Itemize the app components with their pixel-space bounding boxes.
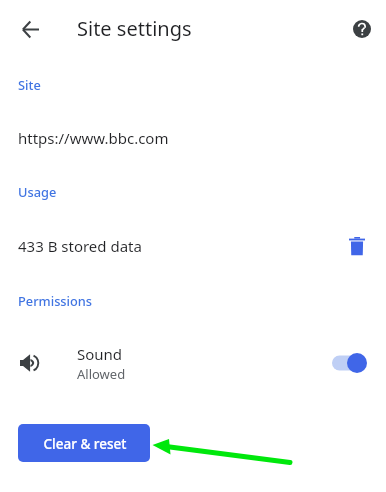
staticText: Site	[18, 76, 41, 93]
button[interactable]: Help	[342, 9, 382, 49]
staticText: Usage	[18, 183, 57, 200]
staticText: Permissions	[18, 292, 93, 309]
staticText: Sound	[77, 344, 123, 364]
button[interactable]: Clear & reset	[18, 424, 150, 462]
button[interactable]: https://www.bbc.com	[0, 120, 386, 156]
button[interactable]: Delete stored data	[341, 230, 373, 262]
button[interactable]: Sound permission toggle, on	[332, 353, 367, 373]
staticText: Allowed	[77, 365, 126, 383]
staticText: Site settings	[77, 15, 192, 42]
staticText: Clear & reset	[43, 435, 127, 453]
staticText: 433 B stored data	[18, 236, 142, 256]
staticText: https://www.bbc.com	[18, 128, 169, 148]
button[interactable]: Sound	[0, 336, 386, 389]
button[interactable]: Back	[10, 9, 50, 49]
button[interactable]: 433 B stored data	[0, 228, 386, 264]
